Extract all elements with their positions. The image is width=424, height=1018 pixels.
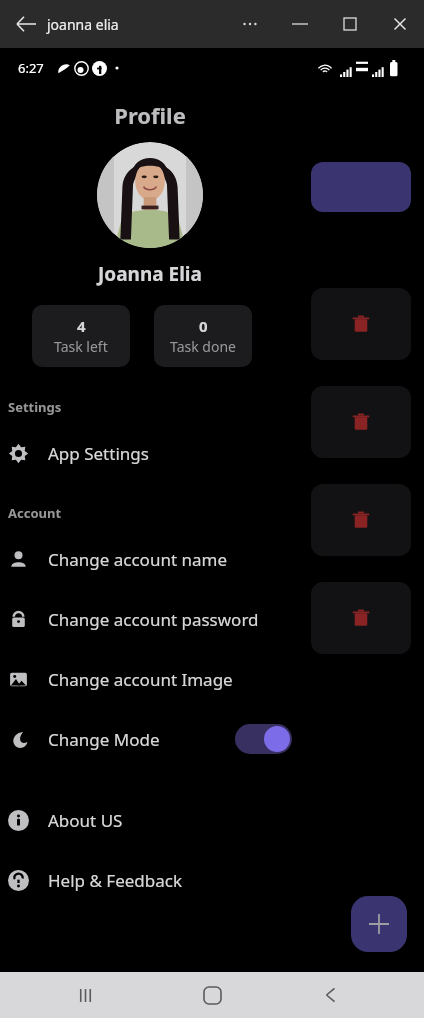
staticText: Joanna Elia xyxy=(98,261,202,287)
button[interactable]: Delete task xyxy=(311,386,411,458)
button[interactable]: More options xyxy=(228,0,272,48)
staticText: Change account name xyxy=(48,548,227,571)
button[interactable]: Delete task xyxy=(311,484,411,556)
button[interactable]: Recent apps xyxy=(62,972,108,1018)
button[interactable]: 0 xyxy=(154,305,252,367)
staticText: 0 xyxy=(199,316,208,336)
button[interactable]: Delete task xyxy=(311,288,411,360)
button[interactable]: Change Mode xyxy=(0,709,424,769)
button[interactable]: Maximize xyxy=(328,0,372,48)
staticText: Task left xyxy=(54,337,108,356)
button[interactable]: Change account Image xyxy=(0,649,424,709)
button[interactable]: Change Mode toggle xyxy=(235,724,292,754)
button[interactable]: Home xyxy=(189,972,235,1018)
staticText: 6:27 xyxy=(18,59,44,77)
staticText: 4 xyxy=(77,316,86,336)
staticText: Change Mode xyxy=(48,728,160,751)
button[interactable]: Back xyxy=(308,972,354,1018)
button[interactable]: Help & Feedback xyxy=(0,850,424,910)
staticText: App Settings xyxy=(48,442,149,465)
staticText: Help & Feedback xyxy=(48,869,182,892)
staticText: About US xyxy=(48,809,123,832)
staticText: Settings xyxy=(8,398,62,416)
staticText: Change account Image xyxy=(48,668,233,691)
button[interactable]: Change account name xyxy=(0,529,424,589)
button[interactable]: Minimize xyxy=(278,0,322,48)
button[interactable]: About US xyxy=(0,790,424,850)
button[interactable]: Delete task xyxy=(311,582,411,654)
button[interactable]: Change account password xyxy=(0,589,424,649)
button[interactable]: App Settings xyxy=(0,423,424,483)
button[interactable]: 4 xyxy=(32,305,130,367)
staticText: Change account password xyxy=(48,608,259,631)
button[interactable]: Add task xyxy=(351,896,407,952)
staticText: Account xyxy=(8,504,62,522)
staticText: Profile xyxy=(0,100,300,130)
staticText: joanna elia xyxy=(47,15,119,34)
button[interactable]: Back xyxy=(4,2,48,46)
button[interactable]: Task card xyxy=(311,162,411,212)
staticText: Task done xyxy=(170,337,236,356)
button[interactable]: Close xyxy=(378,0,422,48)
button[interactable]: Profile photo xyxy=(97,142,203,248)
